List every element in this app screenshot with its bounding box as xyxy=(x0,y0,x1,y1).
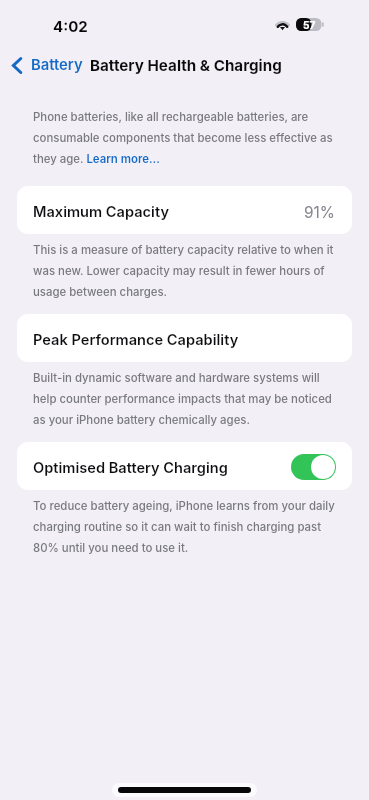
button[interactable]: Learn more xyxy=(85,152,158,168)
other: Back to Battery xyxy=(12,57,22,74)
staticText: 91% xyxy=(304,203,335,222)
button[interactable]: Back to Battery xyxy=(6,49,95,81)
staticText: Optimised Battery Charging xyxy=(33,459,228,477)
staticText: 57 xyxy=(303,19,316,31)
staticText: Built-in dynamic software and hardware s… xyxy=(33,371,339,427)
other: Wi-Fi xyxy=(274,18,291,30)
staticText: Battery Health & Charging xyxy=(90,56,282,74)
staticText: Battery xyxy=(31,56,83,74)
button[interactable]: Peak Performance Capability xyxy=(17,314,352,362)
button[interactable]: Maximum Capacity xyxy=(17,186,352,234)
button[interactable]: Optimised Battery Charging xyxy=(291,454,336,480)
staticText: This is a measure of battery capacity re… xyxy=(33,243,339,299)
staticText: To reduce battery ageing, iPhone learns … xyxy=(33,499,339,555)
staticText: 4:02 xyxy=(53,17,88,35)
staticText: Phone batteries, like all rechargeable b… xyxy=(33,110,339,166)
other: Battery 57 percent xyxy=(296,18,324,31)
staticText: Peak Performance Capability xyxy=(33,331,239,349)
staticText: Maximum Capacity xyxy=(33,203,169,221)
